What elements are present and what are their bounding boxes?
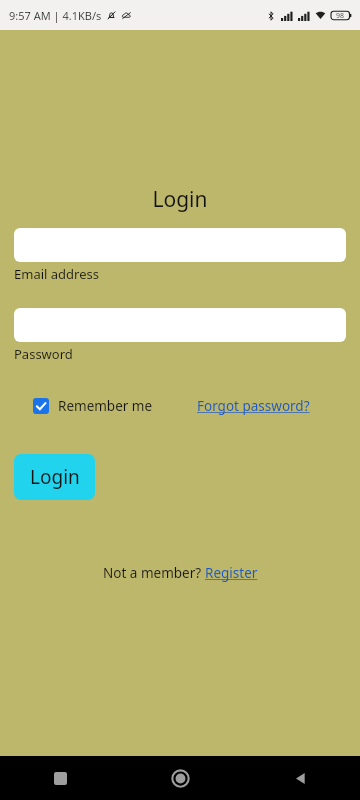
button[interactable]: Back (240, 756, 360, 800)
button[interactable]: Home (120, 756, 240, 800)
button[interactable]: Login (14, 454, 95, 500)
staticText: Register (205, 564, 258, 582)
staticText: Forgot password? (197, 397, 310, 415)
staticText: Password (14, 345, 73, 363)
other: Remember me checkbox (33, 398, 49, 414)
staticText: 9:57 AM | 4.1KB/s (9, 8, 102, 23)
staticText: Remember me (58, 397, 153, 415)
button[interactable] (14, 308, 346, 342)
staticText: 98 (336, 11, 345, 21)
button[interactable]: Register (205, 564, 258, 582)
button[interactable]: Forgot password? (197, 397, 310, 415)
button[interactable]: Recents (0, 756, 120, 800)
button[interactable] (14, 228, 346, 262)
staticText: Login (30, 464, 80, 490)
button[interactable]: Remember me checkbox (33, 397, 153, 415)
staticText: Not a member? (103, 564, 205, 582)
staticText: Login (0, 185, 360, 214)
staticText: Email address (14, 265, 99, 283)
